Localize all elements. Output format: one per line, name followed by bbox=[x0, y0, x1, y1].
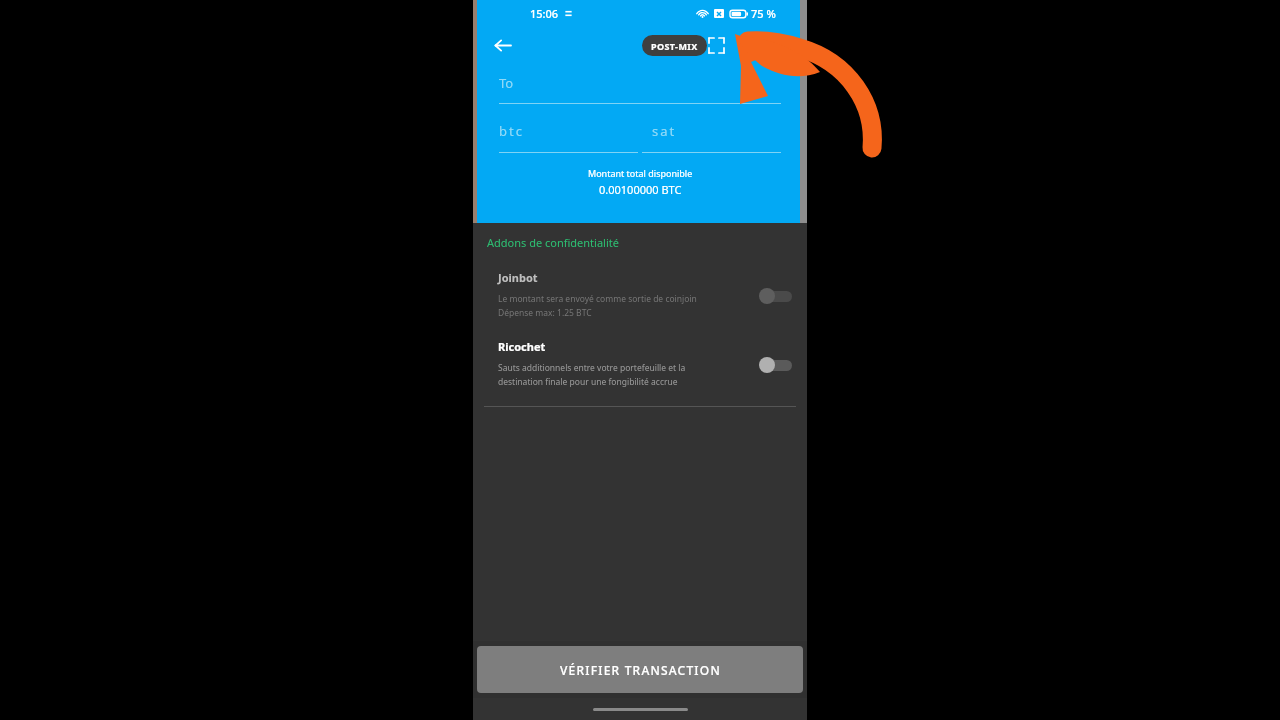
staticText: Le montant sera envoyé comme sortie de c… bbox=[498, 293, 697, 305]
staticText: Ricochet bbox=[498, 339, 546, 354]
staticText: VÉRIFIER TRANSACTION bbox=[560, 662, 721, 678]
button[interactable]: VÉRIFIER TRANSACTION bbox=[477, 646, 803, 693]
button[interactable]: POST-MIX bbox=[642, 35, 707, 56]
staticText: sat bbox=[652, 122, 677, 140]
staticText: 15:06 bbox=[530, 6, 559, 21]
staticText: Joinbot bbox=[498, 270, 538, 285]
staticText: destination finale pour une fongibilité … bbox=[498, 376, 678, 388]
staticText: To bbox=[499, 74, 514, 92]
staticText: POST-MIX bbox=[651, 40, 698, 52]
staticText: btc bbox=[499, 122, 524, 140]
staticText: Dépense max: 1.25 BTC bbox=[498, 307, 592, 319]
button[interactable]: Scan QR code bbox=[702, 31, 730, 59]
staticText: Addons de confidentialité bbox=[487, 235, 619, 250]
staticText: Sauts additionnels entre votre portefeui… bbox=[498, 362, 686, 374]
staticText: 75 % bbox=[751, 6, 776, 21]
staticText: Montant total disponible bbox=[588, 167, 693, 179]
button[interactable]: Ricochet bbox=[473, 339, 807, 390]
button[interactable]: Back bbox=[487, 30, 517, 60]
staticText: 0.00100000 BTC bbox=[599, 182, 682, 197]
button[interactable]: Joinbot bbox=[473, 270, 807, 321]
